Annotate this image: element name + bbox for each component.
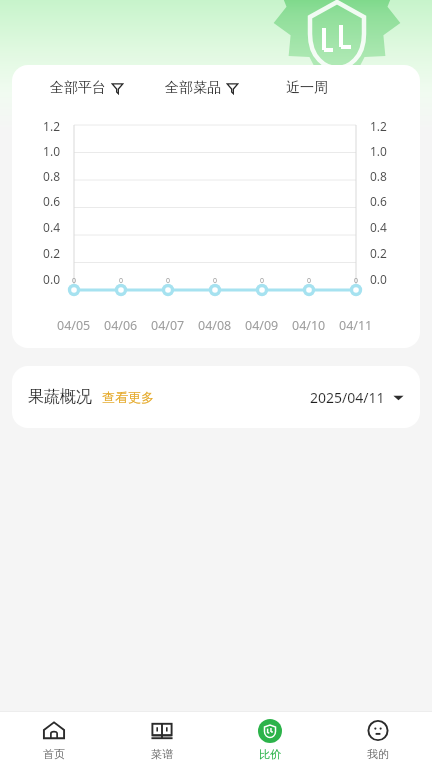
staticText: 0.6 (370, 193, 387, 209)
button[interactable]: 果蔬概况 (12, 366, 420, 428)
staticText: 1.0 (43, 143, 60, 159)
staticText: 04/11 (339, 317, 373, 334)
other: Change date (393, 392, 404, 403)
staticText: 果蔬概况 (28, 387, 92, 407)
staticText: 0 (166, 276, 171, 286)
staticText: 0.8 (43, 168, 60, 184)
staticText: 首页 (43, 747, 65, 761)
staticText: 0.4 (43, 219, 60, 235)
staticText: 0 (307, 276, 312, 286)
staticText: 0.8 (370, 168, 387, 184)
staticText: 0 (260, 276, 265, 286)
staticText: 04/06 (104, 317, 138, 334)
staticText: 04/07 (151, 317, 185, 334)
staticText: 0 (213, 276, 218, 286)
staticText: 1.2 (370, 118, 387, 134)
staticText: 04/10 (292, 317, 326, 334)
staticText: 菜谱 (151, 747, 173, 761)
button[interactable]: 比价 (216, 712, 324, 768)
staticText: 2025/04/11 (310, 388, 385, 407)
button[interactable]: 我的 (324, 712, 432, 768)
button[interactable]: 首页 (0, 712, 108, 768)
staticText: 1.2 (43, 118, 60, 134)
staticText: 0 (119, 276, 124, 286)
button[interactable]: 菜谱 (108, 712, 216, 768)
staticText: 0.2 (43, 245, 60, 261)
button[interactable]: 2025/04/11 (310, 388, 404, 407)
staticText: 0.0 (370, 271, 387, 287)
staticText: 0 (72, 276, 77, 286)
staticText: 近一周 (286, 79, 328, 97)
staticText: 比价 (259, 747, 281, 761)
button[interactable]: 全部平台 (50, 79, 123, 97)
staticText: 全部平台 (50, 79, 106, 97)
staticText: 0.6 (43, 193, 60, 209)
staticText: 0 (354, 276, 359, 286)
staticText: 全部菜品 (165, 79, 221, 97)
staticText: 1.0 (370, 143, 387, 159)
button[interactable]: 查看更多 (102, 389, 154, 405)
button[interactable]: 近一周 (286, 79, 328, 97)
staticText: 0.0 (43, 271, 60, 287)
staticText: 0.4 (370, 219, 387, 235)
staticText: 04/08 (198, 317, 232, 334)
staticText: 04/05 (57, 317, 91, 334)
staticText: 我的 (367, 747, 389, 761)
staticText: 查看更多 (102, 389, 154, 405)
staticText: 04/09 (245, 317, 279, 334)
button[interactable]: 全部菜品 (165, 79, 238, 97)
staticText: 0.2 (370, 245, 387, 261)
